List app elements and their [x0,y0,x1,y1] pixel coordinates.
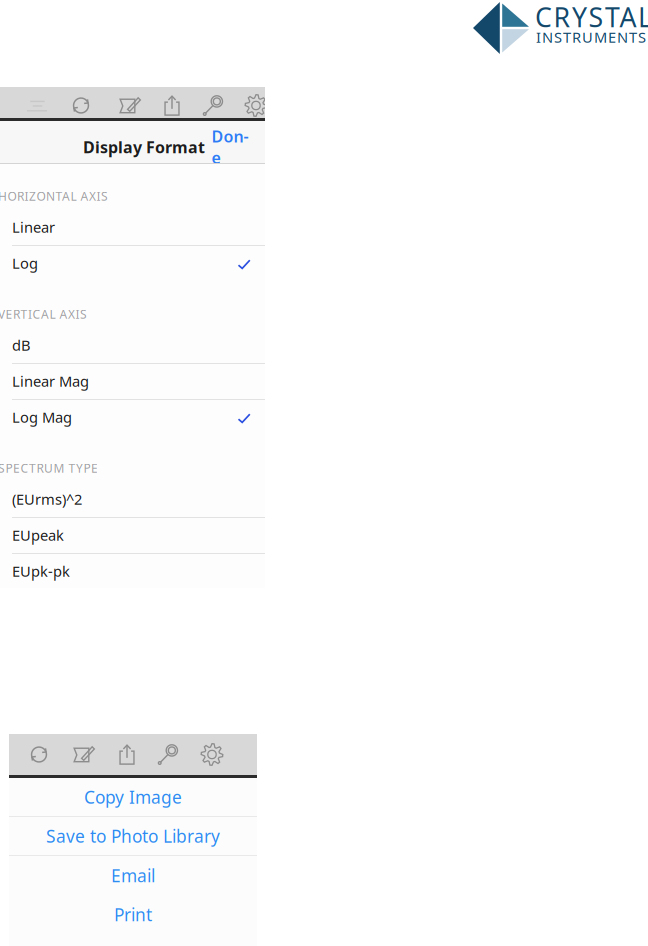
staticText: Display Format [83,136,205,158]
button[interactable]: Annotate [114,90,146,121]
button[interactable]: EUpeak [0,518,265,554]
button[interactable]: Settings [240,90,272,121]
button[interactable]: Done [206,130,254,164]
staticText: Save to Photo Library [46,824,220,847]
button[interactable]: Annotate [68,734,100,775]
button[interactable]: Linear [0,210,265,246]
staticText: Linear Mag [12,371,89,391]
button[interactable]: Zoom [152,734,184,775]
button[interactable]: Settings [196,734,228,775]
button[interactable]: Linear Mag [0,364,265,400]
staticText: EUpeak [12,525,64,545]
button[interactable]: Copy Image [9,778,257,816]
button[interactable]: List [21,90,53,121]
button[interactable]: Log [0,246,265,282]
button[interactable]: Refresh [23,734,55,775]
button[interactable]: Email [9,856,257,895]
staticText: HORIZONTAL AXIS [0,188,108,204]
staticText: dB [12,335,31,355]
staticText: Linear [12,217,55,237]
button[interactable]: EUpk-pk [0,554,265,590]
button[interactable]: Refresh [65,90,97,121]
button[interactable]: Share [156,90,188,121]
staticText: CRYSTAL [535,0,648,35]
staticText: Log Mag [12,407,72,427]
staticText: INSTRUMENTS [536,27,646,47]
button[interactable]: Save to Photo Library [9,817,257,855]
staticText: EUpk-pk [12,561,70,581]
button[interactable]: (EUrms)^2 [0,482,265,518]
staticText: Copy Image [84,785,182,808]
staticText: Log [12,253,38,273]
staticText: SPECTRUM TYPE [0,460,98,476]
staticText: (EUrms)^2 [12,489,82,509]
staticText: VERTICAL AXIS [0,306,87,322]
button[interactable]: Print [9,895,257,934]
button[interactable]: Zoom [197,90,229,121]
button[interactable]: Log Mag [0,400,265,436]
staticText: Print [114,903,152,926]
staticText: Email [111,864,155,887]
button[interactable]: Share [111,734,143,775]
staticText: Done [211,126,248,168]
button[interactable]: dB [0,328,265,364]
